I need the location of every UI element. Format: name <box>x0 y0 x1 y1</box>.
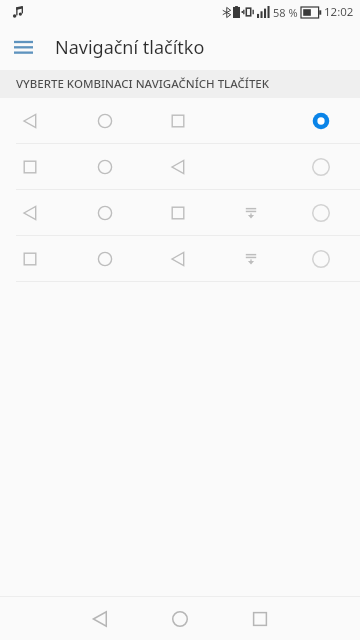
staticText: VYBERTE KOMBINACI NAVIGAČNÍCH TLAČÍTEK <box>16 76 270 92</box>
staticText: 12:02 <box>324 4 354 20</box>
button[interactable]: Home <box>158 597 202 640</box>
button[interactable] <box>0 98 360 143</box>
staticText: Navigační tlačítko <box>55 35 205 60</box>
staticText: 58 % <box>273 5 298 20</box>
button[interactable] <box>0 236 360 281</box>
button[interactable] <box>0 144 360 189</box>
button[interactable]: Open navigation menu <box>0 24 46 70</box>
button[interactable]: Recent apps <box>238 597 282 640</box>
button[interactable] <box>0 190 360 235</box>
button[interactable]: Back <box>78 597 122 640</box>
